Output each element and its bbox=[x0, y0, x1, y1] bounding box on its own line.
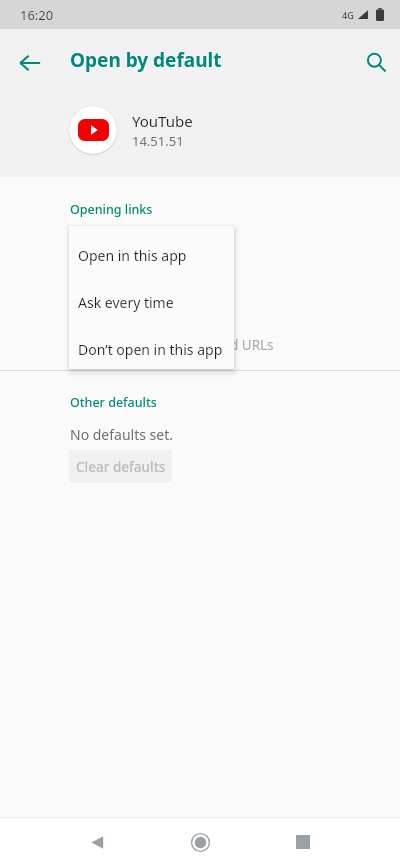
staticText: Opening links bbox=[70, 201, 153, 218]
button[interactable]: Search bbox=[353, 39, 399, 85]
button[interactable]: Back bbox=[6, 39, 54, 87]
button[interactable]: Open by default bbox=[70, 47, 222, 73]
staticText: Clear defaults bbox=[76, 458, 166, 476]
button[interactable]: Ask every time bbox=[69, 285, 234, 319]
staticText: No defaults set. bbox=[70, 425, 173, 444]
staticText: YouTube bbox=[132, 111, 193, 131]
button[interactable]: Recent apps bbox=[278, 817, 328, 867]
button[interactable]: Back bbox=[72, 817, 122, 867]
staticText: 16:20 bbox=[20, 6, 54, 24]
staticText: 4G bbox=[342, 9, 354, 21]
button[interactable]: Don’t open in this app bbox=[69, 332, 234, 366]
staticText: Open supported URLs bbox=[134, 336, 274, 354]
button[interactable]: Open in this app bbox=[69, 238, 234, 272]
staticText: Other defaults bbox=[70, 394, 157, 411]
staticText: Don’t open in this app bbox=[78, 340, 223, 359]
button[interactable]: Clear defaults bbox=[69, 450, 172, 483]
staticText: Open in this app bbox=[78, 246, 187, 265]
button[interactable]: Home bbox=[175, 817, 225, 867]
staticText: Ask every time bbox=[78, 293, 174, 312]
staticText: 14.51.51 bbox=[132, 132, 184, 150]
